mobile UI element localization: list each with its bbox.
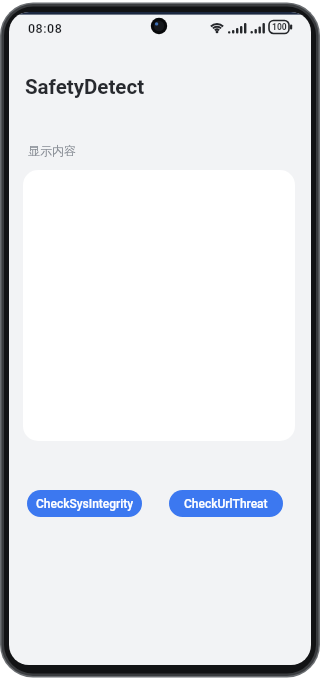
staticText: 显示内容 — [28, 143, 76, 158]
button[interactable]: CheckUrlThreat — [169, 490, 283, 517]
staticText: CheckUrlThreat — [184, 497, 268, 511]
staticText: 100 — [272, 22, 287, 32]
button[interactable]: CheckSysIntegrity — [27, 490, 142, 517]
staticText: CheckSysIntegrity — [36, 497, 134, 511]
staticText: SafetyDetect — [25, 75, 145, 99]
staticText: 08:08 — [28, 21, 63, 36]
